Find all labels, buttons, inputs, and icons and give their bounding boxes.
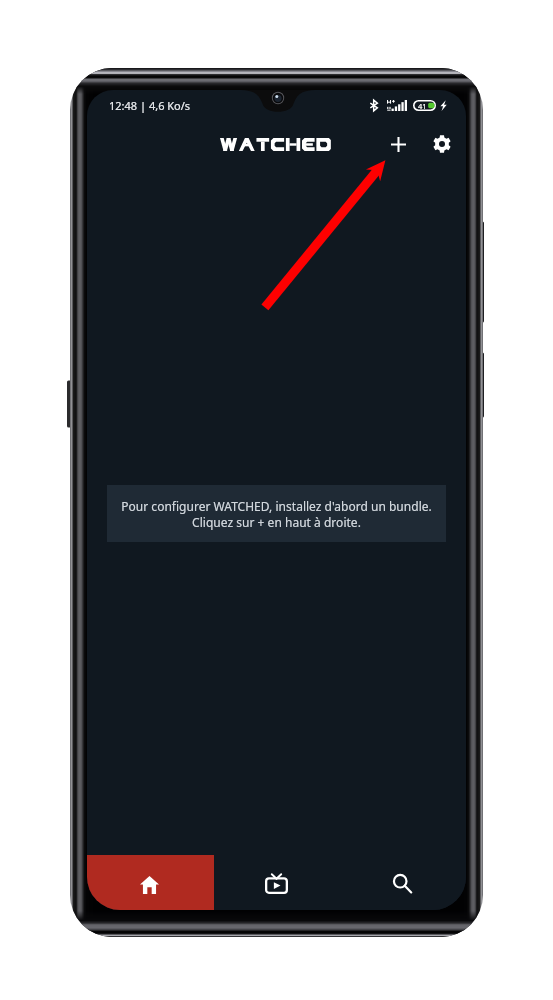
button[interactable]: TV channels: [214, 855, 340, 910]
button[interactable]: Home: [87, 855, 214, 910]
button[interactable]: Settings: [420, 122, 464, 166]
button[interactable]: Search: [340, 855, 466, 910]
staticText: Pour configurer WATCHED, installez d'abo…: [121, 498, 432, 530]
button[interactable]: Add bundle: [376, 122, 420, 166]
staticText: 12:48 | 4,6 Ko/s: [109, 98, 191, 113]
staticText: 41: [418, 101, 427, 111]
